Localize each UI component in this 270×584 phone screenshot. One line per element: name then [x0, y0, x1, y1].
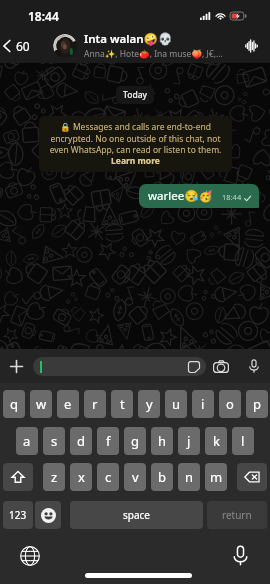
button[interactable]: p: [246, 390, 268, 418]
button[interactable]: Backspace: [237, 463, 267, 491]
button[interactable]: Voice call: [238, 33, 264, 59]
button[interactable]: r: [84, 390, 106, 418]
button[interactable]: space: [70, 501, 203, 529]
staticText: o: [226, 395, 234, 413]
button[interactable]: o: [219, 390, 241, 418]
staticText: b: [158, 468, 166, 486]
button[interactable]: i: [192, 390, 214, 418]
button[interactable]: w: [30, 390, 52, 418]
staticText: return: [222, 508, 252, 522]
button[interactable]: Camera: [209, 354, 233, 378]
button[interactable]: h: [151, 427, 173, 455]
staticText: d: [77, 432, 85, 450]
staticText: t: [120, 395, 125, 413]
button[interactable]: Emoji: [35, 501, 61, 529]
staticText: x: [78, 468, 85, 486]
staticText: s: [51, 432, 58, 450]
staticText: warlee😪🥳: [148, 188, 213, 204]
button[interactable]: e: [57, 390, 79, 418]
button[interactable]: l: [232, 427, 254, 455]
staticText: a: [23, 432, 31, 450]
staticText: p: [253, 395, 261, 413]
button[interactable]: b: [151, 463, 173, 491]
staticText: m: [210, 468, 223, 486]
staticText: k: [213, 432, 220, 450]
staticText: y: [146, 395, 153, 413]
staticText: l: [241, 432, 245, 450]
button[interactable]: Attach: [4, 354, 29, 379]
button[interactable]: return: [207, 501, 267, 529]
button[interactable]: Change keyboard: [15, 541, 44, 570]
button[interactable]: 🔒 Messages and calls are end-to-end encr…: [39, 116, 232, 172]
staticText: 18:44: [222, 192, 242, 202]
button[interactable]: g: [124, 427, 146, 455]
staticText: q: [10, 395, 18, 413]
staticText: v: [132, 468, 139, 486]
button[interactable]: t: [111, 390, 133, 418]
staticText: r: [92, 395, 98, 413]
button[interactable]: u: [165, 390, 187, 418]
staticText: space: [123, 508, 150, 522]
button[interactable]: Shift: [3, 463, 33, 491]
button[interactable]: f: [97, 427, 119, 455]
button[interactable]: c: [97, 463, 119, 491]
other: Shift: [11, 470, 25, 484]
button[interactable]: y: [138, 390, 160, 418]
staticText: Anna✨, Hote🍅, Ina muse🍑, J€,...: [84, 48, 223, 60]
staticText: h: [158, 432, 167, 450]
staticText: Today: [123, 89, 147, 101]
staticText: j: [187, 432, 191, 450]
button[interactable]: Voice message: [243, 355, 265, 377]
staticText: 18:44: [28, 8, 59, 24]
staticText: f: [106, 432, 111, 450]
staticText: i: [201, 395, 205, 413]
button[interactable]: v: [124, 463, 146, 491]
staticText: 123: [9, 508, 27, 522]
staticText: n: [185, 468, 194, 486]
staticText: Inta walan🤪💀: [84, 31, 173, 47]
other: Backspace: [244, 471, 260, 483]
button[interactable]: d: [70, 427, 92, 455]
button[interactable]: x: [70, 463, 92, 491]
staticText: z: [51, 468, 58, 486]
staticText: e: [64, 395, 72, 413]
staticText: c: [105, 468, 112, 486]
button[interactable]: k: [205, 427, 227, 455]
button[interactable]: j: [178, 427, 200, 455]
button[interactable]: s: [43, 427, 65, 455]
button[interactable]: Back: [0, 34, 33, 58]
button[interactable]: m: [205, 463, 227, 491]
button[interactable]: 123: [3, 501, 33, 529]
button[interactable]: warlee😪🥳: [139, 184, 259, 208]
staticText: 🔒 Messages and calls are end-to-end encr…: [49, 121, 222, 167]
button[interactable]: [33, 357, 206, 376]
button[interactable]: q: [3, 390, 25, 418]
staticText: g: [131, 432, 139, 450]
button[interactable]: Dictate: [226, 541, 255, 570]
button[interactable]: z: [43, 463, 65, 491]
staticText: u: [172, 395, 181, 413]
staticText: 60: [16, 38, 30, 54]
staticText: w: [36, 395, 47, 413]
button[interactable]: a: [16, 427, 38, 455]
button[interactable]: n: [178, 463, 200, 491]
